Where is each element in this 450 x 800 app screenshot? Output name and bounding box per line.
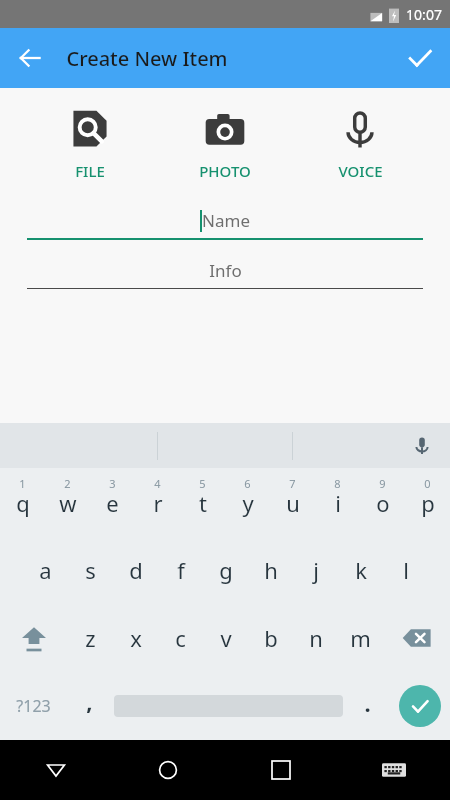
staticText: t (199, 488, 207, 518)
staticText: j (313, 555, 319, 585)
staticText: z (85, 623, 96, 653)
button[interactable]: Done (398, 36, 442, 80)
button[interactable]: z (67, 604, 113, 672)
button[interactable]: Back (8, 36, 52, 80)
button[interactable]: c (158, 604, 203, 672)
staticText: 2 (64, 476, 71, 491)
staticText: x (130, 623, 142, 653)
button[interactable]: 2 (45, 468, 90, 536)
button[interactable]: v (203, 604, 248, 672)
button[interactable]: PHOTO (180, 105, 270, 183)
staticText: VOICE (338, 161, 383, 181)
staticText: b (264, 623, 278, 653)
staticText: l (403, 555, 409, 585)
button[interactable]: Enter (390, 672, 450, 740)
staticText: y (242, 488, 254, 518)
staticText: 9 (379, 476, 386, 491)
staticText: v (220, 623, 232, 653)
staticText: f (177, 555, 185, 585)
button[interactable]: Info (27, 256, 423, 289)
button[interactable]: s (68, 536, 113, 604)
staticText: n (309, 623, 323, 653)
button[interactable]: VOICE (315, 105, 405, 183)
staticText: Info (209, 259, 242, 282)
button[interactable]: l (383, 536, 428, 604)
button[interactable]: . (345, 672, 390, 740)
staticText: . (364, 688, 371, 718)
button[interactable]: 4 (135, 468, 180, 536)
staticText: 8 (334, 476, 341, 491)
button[interactable]: ?123 (0, 672, 67, 740)
button[interactable]: n (293, 604, 338, 672)
staticText: h (264, 555, 278, 585)
button[interactable]: j (293, 536, 338, 604)
button[interactable]: Back (0, 740, 112, 800)
button[interactable]: k (338, 536, 383, 604)
staticText: u (286, 488, 300, 518)
staticText: k (355, 555, 367, 585)
staticText: Create New Item (66, 45, 228, 72)
button[interactable]: 1 (0, 468, 45, 536)
staticText: o (376, 488, 390, 518)
staticText: 7 (289, 476, 296, 491)
button[interactable]: 7 (270, 468, 315, 536)
button[interactable]: Recents (224, 740, 337, 800)
staticText: 1 (19, 476, 26, 491)
button[interactable]: m (338, 604, 383, 672)
button[interactable]: 6 (225, 468, 270, 536)
staticText: ?123 (16, 695, 51, 717)
staticText: m (350, 623, 371, 653)
button[interactable]: 8 (315, 468, 360, 536)
staticText: s (85, 555, 96, 585)
staticText: e (106, 488, 119, 518)
staticText: g (219, 555, 233, 585)
staticText: q (16, 488, 30, 518)
button[interactable]: a (22, 536, 68, 604)
button[interactable]: 9 (360, 468, 405, 536)
staticText: 0 (424, 476, 431, 491)
staticText: c (175, 623, 186, 653)
staticText: 5 (199, 476, 206, 491)
button[interactable]: Name (27, 206, 423, 240)
button[interactable]: x (113, 604, 158, 672)
staticText: 4 (154, 476, 161, 491)
button[interactable]: 0 (405, 468, 450, 536)
button[interactable]: b (248, 604, 293, 672)
staticText: Name (202, 209, 250, 232)
button[interactable]: h (248, 536, 293, 604)
staticText: 10:07 (406, 5, 442, 24)
button[interactable]: 5 (180, 468, 225, 536)
staticText: i (335, 488, 341, 518)
button[interactable]: Voice input (402, 426, 442, 466)
staticText: 3 (109, 476, 116, 491)
staticText: FILE (75, 161, 105, 181)
button[interactable]: FILE (45, 105, 135, 183)
button[interactable]: Shift (0, 604, 67, 672)
staticText: r (153, 488, 163, 518)
button[interactable]: Home (112, 740, 224, 800)
staticText: , (86, 686, 93, 716)
button[interactable]: Keyboard (337, 740, 450, 800)
button[interactable]: d (113, 536, 158, 604)
staticText: PHOTO (199, 161, 251, 181)
button[interactable]: Backspace (383, 604, 450, 672)
staticText: p (421, 488, 435, 518)
staticText: a (39, 555, 52, 585)
button[interactable]: g (203, 536, 248, 604)
button[interactable]: 3 (90, 468, 135, 536)
staticText: d (129, 555, 143, 585)
staticText: w (59, 488, 77, 518)
staticText: 6 (244, 476, 251, 491)
button[interactable]: , (67, 672, 112, 740)
button[interactable]: f (158, 536, 203, 604)
button[interactable]: Space (112, 672, 345, 740)
